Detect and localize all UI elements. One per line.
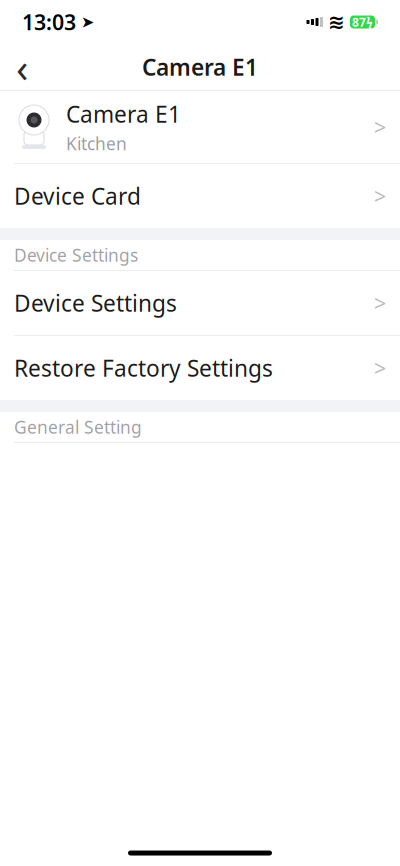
staticText: General Setting xyxy=(14,415,142,438)
staticText: ≋ xyxy=(328,11,345,33)
button[interactable]: Back xyxy=(0,45,44,89)
staticText: > xyxy=(374,113,386,141)
staticText: 13:03 xyxy=(22,8,76,36)
staticText: ‹ xyxy=(16,40,28,93)
staticText: Device Card xyxy=(14,181,141,211)
staticText: Device Settings xyxy=(14,243,138,266)
button[interactable]: Device Card xyxy=(0,164,400,228)
staticText: ϟ xyxy=(366,14,373,30)
button[interactable]: Device Settings xyxy=(0,271,400,335)
staticText: > xyxy=(374,354,386,382)
staticText: 87 xyxy=(352,14,366,30)
staticText: > xyxy=(374,182,386,210)
button[interactable]: Camera E1 xyxy=(0,91,400,163)
staticText: ➤ xyxy=(81,13,94,31)
staticText: Camera E1 xyxy=(142,52,258,82)
staticText: Restore Factory Settings xyxy=(14,353,273,383)
staticText: > xyxy=(374,289,386,317)
staticText: Device Settings xyxy=(14,288,177,318)
button[interactable]: Restore Factory Settings xyxy=(0,336,400,400)
staticText: Camera E1 xyxy=(66,99,181,129)
staticText: Kitchen xyxy=(66,132,127,155)
